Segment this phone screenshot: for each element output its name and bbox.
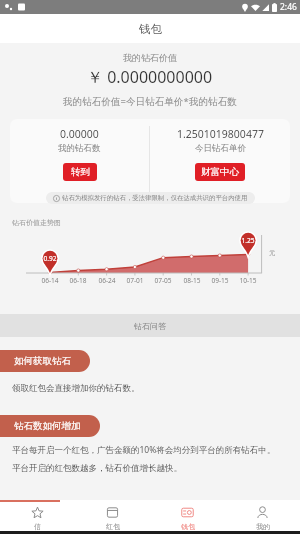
staticText: 钱包 <box>139 22 162 36</box>
staticText: 我的钻石价值=今日钻石单价*我的钻石数 <box>63 95 237 108</box>
staticText: 钻石为模拟发行的钻石，受法律限制，仅在达成共识的平台内使用 <box>62 194 248 202</box>
button[interactable]: 转到 <box>63 163 97 181</box>
button[interactable]: 如何获取钻石 <box>0 350 90 372</box>
staticText: 0.00000 <box>60 127 99 141</box>
staticText: 1.25 <box>238 236 258 245</box>
staticText: 今日钻石单价 <box>195 143 246 154</box>
staticText: 09-15 <box>209 276 231 285</box>
staticText: 如何获取钻石 <box>14 355 71 367</box>
button[interactable]: 红包 <box>75 500 150 531</box>
staticText: 钻石数如何增加 <box>14 420 81 432</box>
staticText: 信 <box>34 522 41 531</box>
staticText: 我的钻石价值 <box>123 52 177 63</box>
staticText: 08-15 <box>181 276 203 285</box>
staticText: 平台每开启一个红包，广告金额的10%将会均分到平台的所有钻石中。 平台开启的红包… <box>12 444 276 474</box>
staticText: 07-05 <box>152 276 174 285</box>
staticText: 领取红包会直接增加你的钻石数。 <box>12 383 140 394</box>
staticText: 0.92 <box>40 254 60 263</box>
staticText: 财富中心 <box>201 166 239 178</box>
staticText: 2:46 <box>280 1 297 13</box>
staticText: 10-15 <box>237 276 259 285</box>
button[interactable]: 钱包 <box>150 500 225 531</box>
staticText: 元 <box>269 249 276 257</box>
button[interactable]: 我的 <box>225 500 300 531</box>
staticText: 06-18 <box>67 276 89 285</box>
button[interactable]: 财富中心 <box>195 163 245 181</box>
staticText: ￥ 0.0000000000 <box>87 66 213 88</box>
staticText: 我的 <box>256 522 270 531</box>
staticText: 钻石价值走势图 <box>12 218 61 227</box>
staticText: 红包 <box>106 522 120 531</box>
staticText: 06-14 <box>39 276 61 285</box>
staticText: 钱包 <box>181 522 195 531</box>
staticText: 06-24 <box>96 276 118 285</box>
staticText: 钻石问答 <box>134 321 166 331</box>
staticText: 我的钻石数 <box>58 143 101 154</box>
staticText: 转到 <box>71 166 90 178</box>
button[interactable]: 钻石数如何增加 <box>0 415 100 437</box>
staticText: 1.2501019800477 <box>177 127 264 141</box>
staticText: 07-01 <box>124 276 146 285</box>
button[interactable]: 信 <box>0 500 75 531</box>
